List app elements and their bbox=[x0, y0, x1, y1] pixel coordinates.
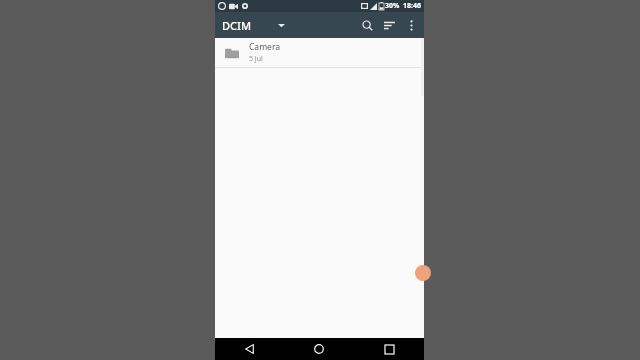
staticText: 5 Jul bbox=[249, 54, 263, 64]
button[interactable]: Back bbox=[215, 338, 284, 360]
staticText: 30% bbox=[385, 1, 400, 11]
staticText: 18:46 bbox=[403, 1, 421, 11]
button[interactable]: Search bbox=[356, 14, 378, 36]
staticText: DCIM bbox=[222, 18, 252, 33]
button[interactable]: Recent apps bbox=[354, 338, 424, 360]
button[interactable]: DCIM bbox=[215, 14, 291, 37]
button[interactable]: Camera bbox=[215, 38, 424, 67]
staticText: Camera bbox=[249, 41, 280, 53]
button[interactable]: Home bbox=[284, 338, 354, 360]
button[interactable]: More options bbox=[400, 14, 422, 36]
button[interactable]: Sort bbox=[378, 14, 400, 36]
